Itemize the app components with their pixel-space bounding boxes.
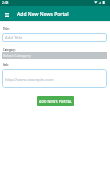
button[interactable]: ADD NEWS PORTAL — [37, 96, 74, 106]
staticText: Category: — [3, 48, 16, 52]
staticText: link: — [3, 63, 9, 67]
staticText: http://www.example.com — [5, 77, 54, 83]
staticText: Add Title — [5, 35, 23, 41]
staticText: ADD NEWS PORTAL — [39, 99, 72, 103]
button[interactable]: Add Title — [2, 33, 107, 42]
button[interactable]: Select Category — [2, 52, 107, 59]
button[interactable]: Open navigation menu — [2, 10, 12, 20]
staticText: Add New News Portal — [17, 11, 69, 18]
button[interactable]: http://www.example.com — [2, 69, 107, 88]
staticText: 2:38 — [2, 1, 9, 5]
staticText: Select Category — [3, 53, 31, 58]
staticText: Title: — [3, 27, 10, 31]
